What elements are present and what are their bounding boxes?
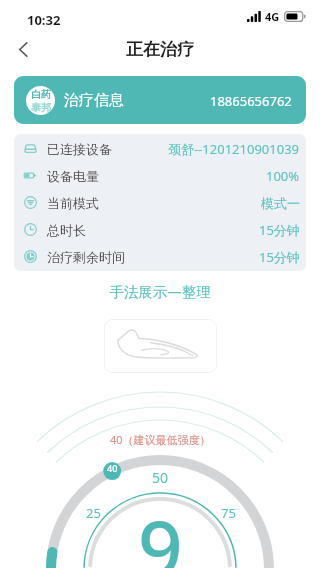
staticText: 10:32 [27,11,61,29]
staticText: 15分钟 [259,248,300,266]
staticText: 总时长 [47,222,86,238]
staticText: 颈舒--1201210901039 [168,140,300,158]
staticText: 治疗信息 [64,91,124,110]
button[interactable]: 白药 [14,76,306,124]
staticText: 18865656762 [210,92,292,110]
button[interactable]: 手法展示 [104,319,217,373]
staticText: 白药 [31,88,51,101]
staticText: 75 [221,504,236,522]
staticText: 泰邦 [31,101,51,114]
button[interactable]: Back [0,30,46,68]
staticText: 4G [265,9,280,24]
button[interactable]: 治疗剩余时间 [14,243,306,270]
staticText: 25 [86,504,101,522]
button[interactable]: 总时长 [14,216,306,243]
button[interactable]: 当前模式 [14,189,306,216]
staticText: 治疗剩余时间 [47,249,125,265]
staticText: 40（建议最低强度） [110,432,211,447]
staticText: 手法展示—整理 [0,281,320,301]
staticText: 50 [152,468,169,487]
staticText: 当前模式 [47,195,99,211]
staticText: 9 [138,494,183,568]
staticText: 100% [266,167,300,185]
staticText: 设备电量 [47,168,99,184]
staticText: 15分钟 [259,221,300,239]
staticText: 模式一 [261,195,300,211]
staticText: 40 [107,462,118,474]
staticText: 已连接设备 [47,141,112,157]
button[interactable]: 已连接设备 [14,135,306,162]
staticText: 正在治疗 [126,39,194,60]
button[interactable]: 设备电量 [14,162,306,189]
